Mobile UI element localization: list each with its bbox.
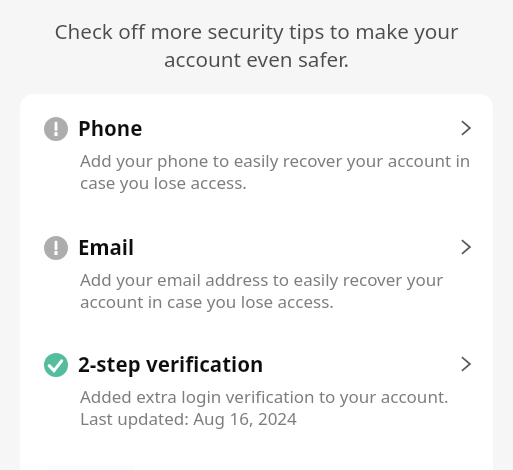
staticText: Email — [78, 233, 134, 261]
staticText: Added extra login verification to your a… — [80, 385, 449, 430]
staticText: Add your email address to easily recover… — [80, 268, 493, 313]
staticText: Phone — [78, 114, 143, 142]
button[interactable]: Email — [44, 233, 493, 313]
button[interactable]: Phone — [44, 114, 493, 194]
other: Open — [461, 120, 471, 136]
other: Open — [461, 239, 471, 255]
other: Open — [461, 356, 471, 372]
staticText: Check off more security tips to make you… — [45, 17, 468, 73]
button[interactable]: 2-step verification — [44, 350, 493, 430]
staticText: Add your phone to easily recover your ac… — [80, 149, 493, 194]
staticText: 2-step verification — [78, 350, 264, 378]
